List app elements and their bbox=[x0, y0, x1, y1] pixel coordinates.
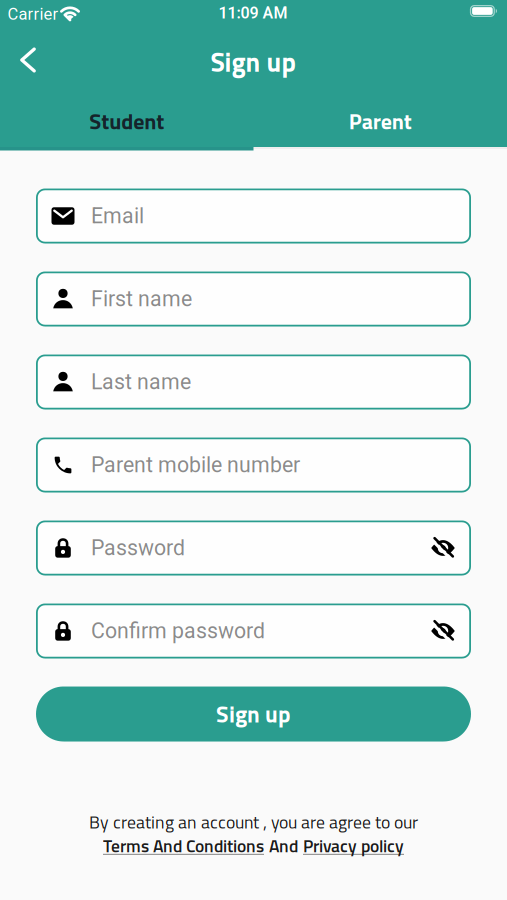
button[interactable]: Email bbox=[36, 188, 471, 243]
staticText: Email bbox=[91, 203, 144, 228]
staticText: And bbox=[269, 832, 298, 859]
button[interactable]: Terms And Conditions bbox=[103, 832, 264, 859]
staticText: Carrier bbox=[7, 4, 58, 24]
staticText: By creating an account , you are agree t… bbox=[89, 808, 418, 835]
button[interactable]: Last name bbox=[36, 354, 471, 409]
button[interactable]: Privacy policy bbox=[303, 832, 404, 859]
button[interactable]: Show password bbox=[431, 520, 471, 575]
staticText: Sign up bbox=[216, 696, 291, 731]
staticText: Privacy policy bbox=[303, 832, 404, 859]
staticText: Password bbox=[91, 535, 185, 560]
button[interactable]: Parent mobile number bbox=[36, 437, 471, 492]
button[interactable]: Show confirm password bbox=[431, 603, 471, 658]
button[interactable]: Confirm password bbox=[36, 603, 431, 658]
staticText: Parent bbox=[349, 104, 412, 138]
button[interactable]: Parent bbox=[253, 91, 507, 151]
button[interactable]: Student bbox=[0, 91, 253, 151]
button[interactable]: Sign up bbox=[36, 686, 471, 741]
staticText: 11:09 AM bbox=[218, 4, 287, 22]
staticText: Terms And Conditions bbox=[103, 832, 264, 859]
staticText: Last name bbox=[91, 369, 191, 394]
staticText: Student bbox=[89, 104, 164, 138]
staticText: Parent mobile number bbox=[91, 452, 300, 477]
staticText: Confirm password bbox=[91, 618, 265, 643]
button[interactable]: First name bbox=[36, 271, 471, 326]
button[interactable]: Password bbox=[36, 520, 431, 575]
button[interactable]: Back bbox=[10, 37, 46, 82]
staticText: First name bbox=[91, 286, 192, 311]
staticText: Sign up bbox=[210, 42, 295, 82]
